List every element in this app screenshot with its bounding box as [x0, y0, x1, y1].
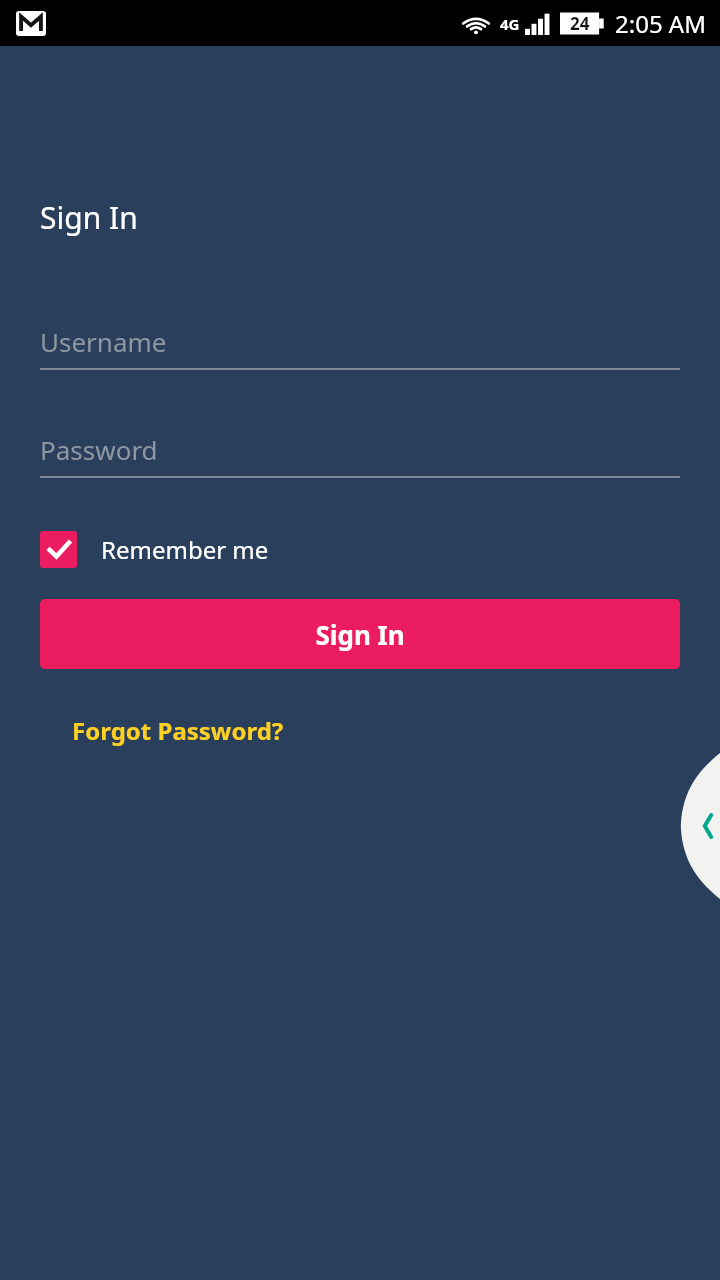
- button[interactable]: Username: [40, 324, 680, 370]
- staticText: Password: [40, 432, 158, 467]
- staticText: Sign In: [315, 617, 405, 652]
- button[interactable]: Password: [40, 432, 680, 478]
- staticText: Username: [40, 324, 167, 359]
- button[interactable]: Sign In: [40, 599, 680, 669]
- staticText: 2:05 AM: [615, 7, 706, 40]
- button[interactable]: Forgot Password?: [70, 712, 286, 749]
- staticText: Forgot Password?: [72, 714, 284, 747]
- staticText: 24: [570, 12, 590, 35]
- button[interactable]: Remember me: [40, 531, 269, 568]
- staticText: Sign In: [40, 197, 138, 238]
- button[interactable]: Open side menu: [680, 753, 720, 899]
- staticText: 4G: [500, 14, 520, 34]
- staticText: Remember me: [101, 533, 269, 566]
